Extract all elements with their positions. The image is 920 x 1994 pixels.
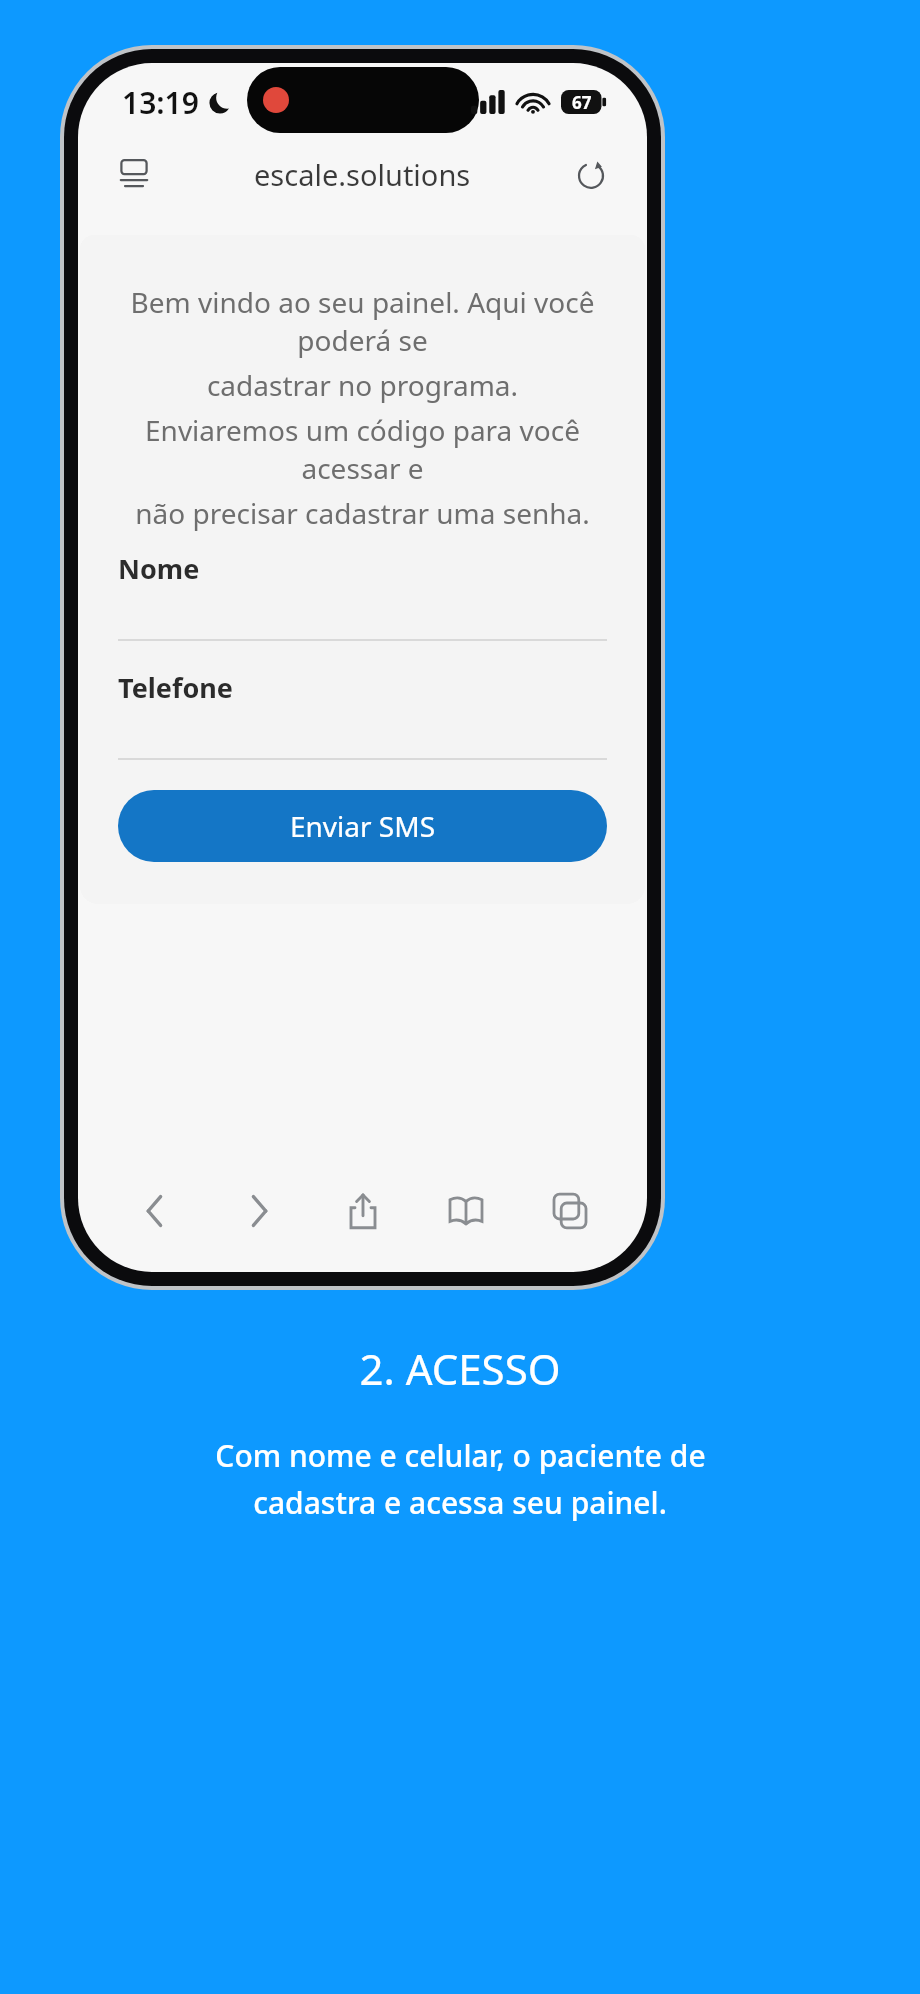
button[interactable]: Telefone	[118, 669, 607, 760]
staticText: Nome	[118, 550, 200, 587]
staticText: cadastrar no programa.	[118, 366, 607, 404]
staticText: 67	[572, 91, 592, 114]
button[interactable]: Nome	[118, 550, 607, 641]
staticText: Telefone	[118, 669, 233, 706]
button[interactable]: Forward	[216, 1168, 302, 1254]
button[interactable]: Bookmarks	[423, 1168, 509, 1254]
button[interactable]: Back	[112, 1168, 198, 1254]
button[interactable]: Tabs	[527, 1168, 613, 1254]
button[interactable]: Enviar SMS	[118, 790, 607, 862]
button[interactable]: Page settings	[106, 146, 162, 202]
staticText: cadastra e acessa seu painel.	[253, 1482, 667, 1523]
staticText: Enviaremos um código para você acessar e	[118, 411, 607, 487]
staticText: Bem vindo ao seu painel. Aqui você poder…	[118, 283, 607, 359]
staticText: Enviar SMS	[290, 807, 436, 845]
staticText: Com nome e celular, o paciente de	[215, 1435, 706, 1476]
button[interactable]: Reload	[563, 146, 619, 202]
button[interactable]: Share	[320, 1168, 406, 1254]
staticText: 2. ACESSO	[359, 1340, 561, 1397]
staticText: 13:19	[122, 82, 199, 123]
staticText: escale.solutions	[254, 155, 471, 194]
staticText: não precisar cadastrar uma senha.	[118, 494, 607, 532]
